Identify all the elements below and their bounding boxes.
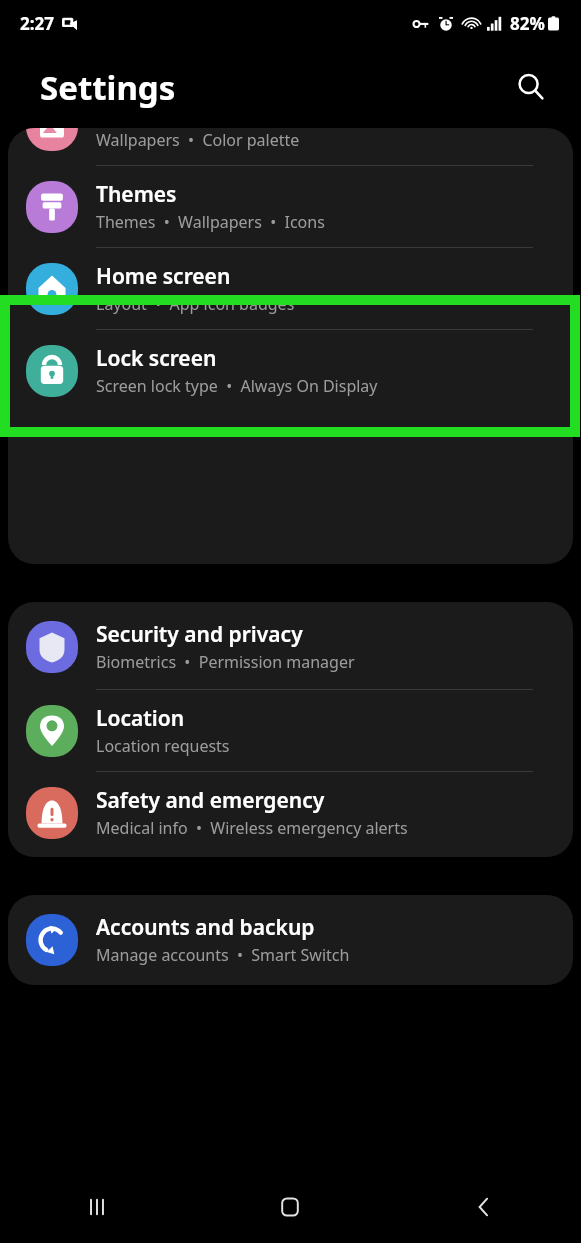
button[interactable]: Security and privacy [8,602,573,689]
staticText: Screen lock type • Always On Display [96,375,378,397]
button[interactable]: Home screen [8,248,573,329]
staticText: Manage accounts • Smart Switch [96,944,350,966]
staticText: Location requests [96,735,230,757]
staticText: Themes • Wallpapers • Icons [96,211,325,233]
staticText: Wallpapers • Color palette [96,129,300,151]
button[interactable]: Accounts and backup [8,895,573,980]
button[interactable]: Lock screen [8,330,573,411]
staticText: Safety and emergency [96,786,325,815]
button[interactable]: Recent apps [0,1171,193,1243]
button[interactable]: Home [193,1171,387,1243]
staticText: Themes [96,180,177,209]
button[interactable]: Search [509,65,553,109]
button[interactable]: Location [8,690,573,771]
staticText: Accounts and backup [96,913,315,942]
staticText: Layout • App icon badges [96,293,295,315]
staticText: Medical info • Wireless emergency alerts [96,817,408,839]
staticText: 2:27 [20,12,54,35]
staticText: Location [96,704,185,733]
staticText: Security and privacy [96,620,303,649]
staticText: Home screen [96,262,231,291]
staticText: Biometrics • Permission manager [96,651,355,673]
button[interactable]: Themes [8,166,573,247]
staticText: Settings [40,65,176,110]
button[interactable]: Back [387,1171,581,1243]
button[interactable]: Safety and emergency [8,772,573,857]
button[interactable]: Wallpaper and style [8,128,573,165]
staticText: Lock screen [96,344,217,373]
staticText: 82% [510,12,545,35]
